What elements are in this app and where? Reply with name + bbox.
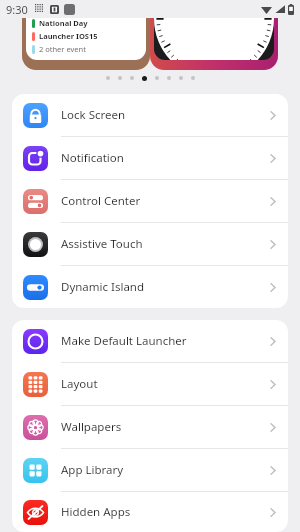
button[interactable]: Dynamic Island — [12, 266, 288, 308]
button[interactable]: Control Center — [12, 180, 288, 223]
staticText: 9:30 — [6, 2, 28, 17]
staticText: 2 other event — [39, 44, 86, 54]
button[interactable]: Notification — [12, 137, 288, 180]
staticText: Hidden Apps — [61, 504, 270, 520]
button[interactable] — [150, 18, 278, 70]
staticText: Wallpapers — [61, 419, 270, 435]
button[interactable]: Make Default Launcher — [12, 320, 288, 363]
staticText: Assistive Touch — [61, 236, 270, 252]
staticText: Layout — [61, 376, 270, 392]
staticText: Lock Screen — [61, 107, 270, 123]
button[interactable]: Hidden Apps — [12, 492, 288, 532]
staticText: Launcher IOS15 — [39, 31, 98, 41]
staticText: Dynamic Island — [61, 279, 270, 295]
button[interactable]: Assistive Touch — [12, 223, 288, 266]
staticText: National Day — [39, 18, 88, 28]
staticText: Make Default Launcher — [61, 333, 270, 349]
button[interactable]: App Library — [12, 449, 288, 492]
staticText: Control Center — [61, 193, 270, 209]
staticText: App Library — [61, 462, 270, 478]
button[interactable]: Lock Screen — [12, 94, 288, 137]
button[interactable]: Wallpapers — [12, 406, 288, 449]
button[interactable]: Layout — [12, 363, 288, 406]
button[interactable]: National Day — [22, 18, 150, 70]
staticText: Notification — [61, 150, 270, 166]
